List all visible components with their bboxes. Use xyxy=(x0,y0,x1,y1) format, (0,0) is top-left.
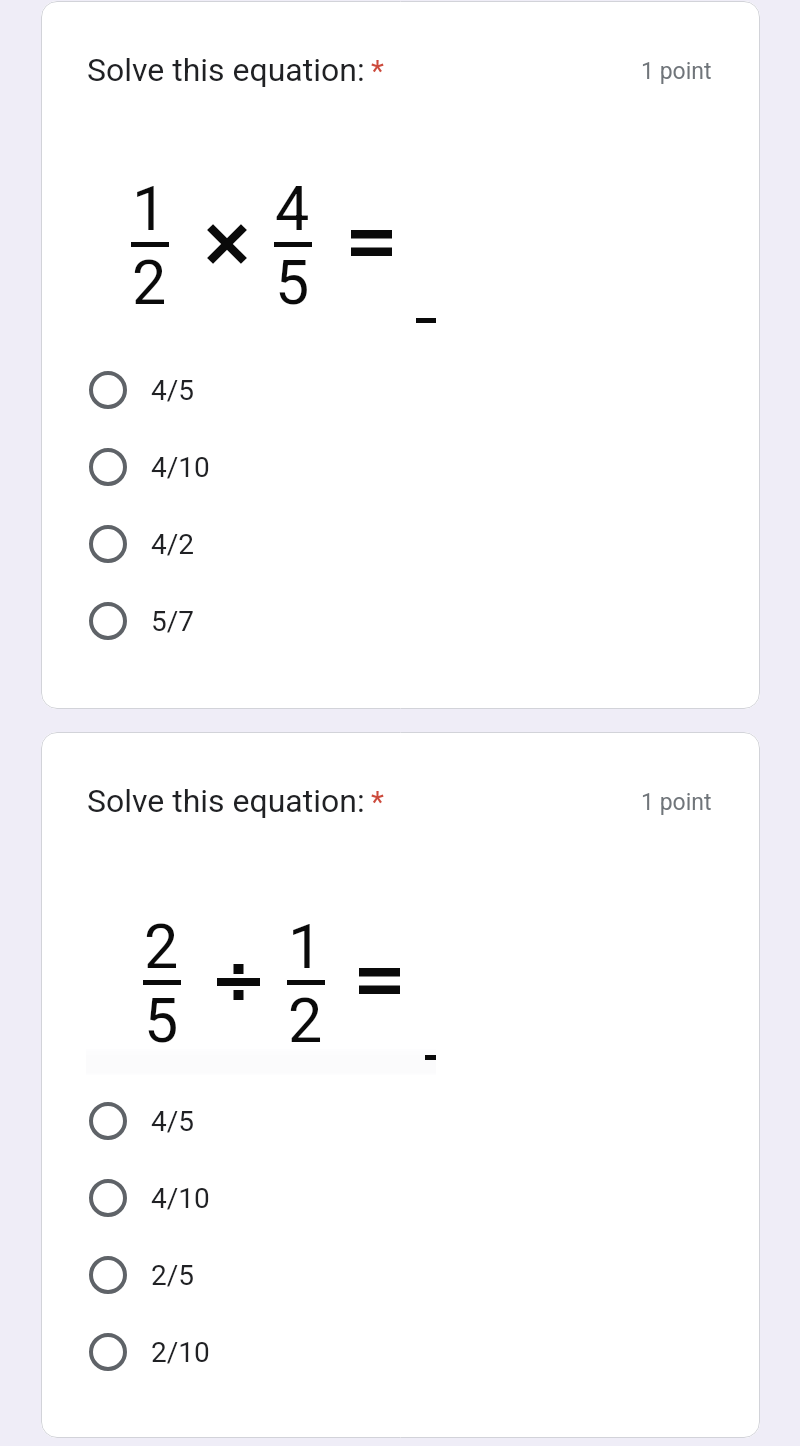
staticText: 4 xyxy=(275,173,310,244)
staticText: 5 xyxy=(275,247,310,318)
staticText: 4/10 xyxy=(151,1182,210,1215)
staticText: 4/5 xyxy=(151,374,195,407)
button[interactable]: Answer option 4/10 xyxy=(41,429,760,505)
staticText: 1 point xyxy=(641,58,712,85)
staticText: * xyxy=(371,53,384,88)
button[interactable]: Answer option 5/7 xyxy=(41,583,760,659)
staticText: 2/10 xyxy=(151,1336,210,1369)
staticText: 4/5 xyxy=(151,1105,195,1138)
staticText: 5/7 xyxy=(151,605,195,638)
staticText: Solve this equation: xyxy=(87,51,365,89)
staticText: Solve this equation: xyxy=(87,782,365,820)
staticText: 2 xyxy=(132,247,167,318)
staticText: 4/10 xyxy=(151,451,210,484)
button[interactable]: Answer option 4/5 xyxy=(41,1083,760,1159)
button[interactable]: Answer option 2/10 xyxy=(41,1314,760,1390)
staticText: 5 xyxy=(144,985,179,1056)
staticText: 2 xyxy=(288,985,323,1056)
staticText: 1 point xyxy=(641,789,712,816)
staticText: * xyxy=(371,784,384,819)
staticText: 4/2 xyxy=(151,528,195,561)
button[interactable]: Answer option 2/5 xyxy=(41,1237,760,1313)
staticText: 2 xyxy=(144,911,179,982)
staticText: 1 xyxy=(132,173,167,244)
staticText: 2/5 xyxy=(151,1259,195,1292)
button[interactable]: Answer option 4/2 xyxy=(41,506,760,582)
button[interactable]: Answer option 4/5 xyxy=(41,352,760,428)
button[interactable]: Answer option 4/10 xyxy=(41,1160,760,1236)
staticText: 1 xyxy=(288,911,323,982)
